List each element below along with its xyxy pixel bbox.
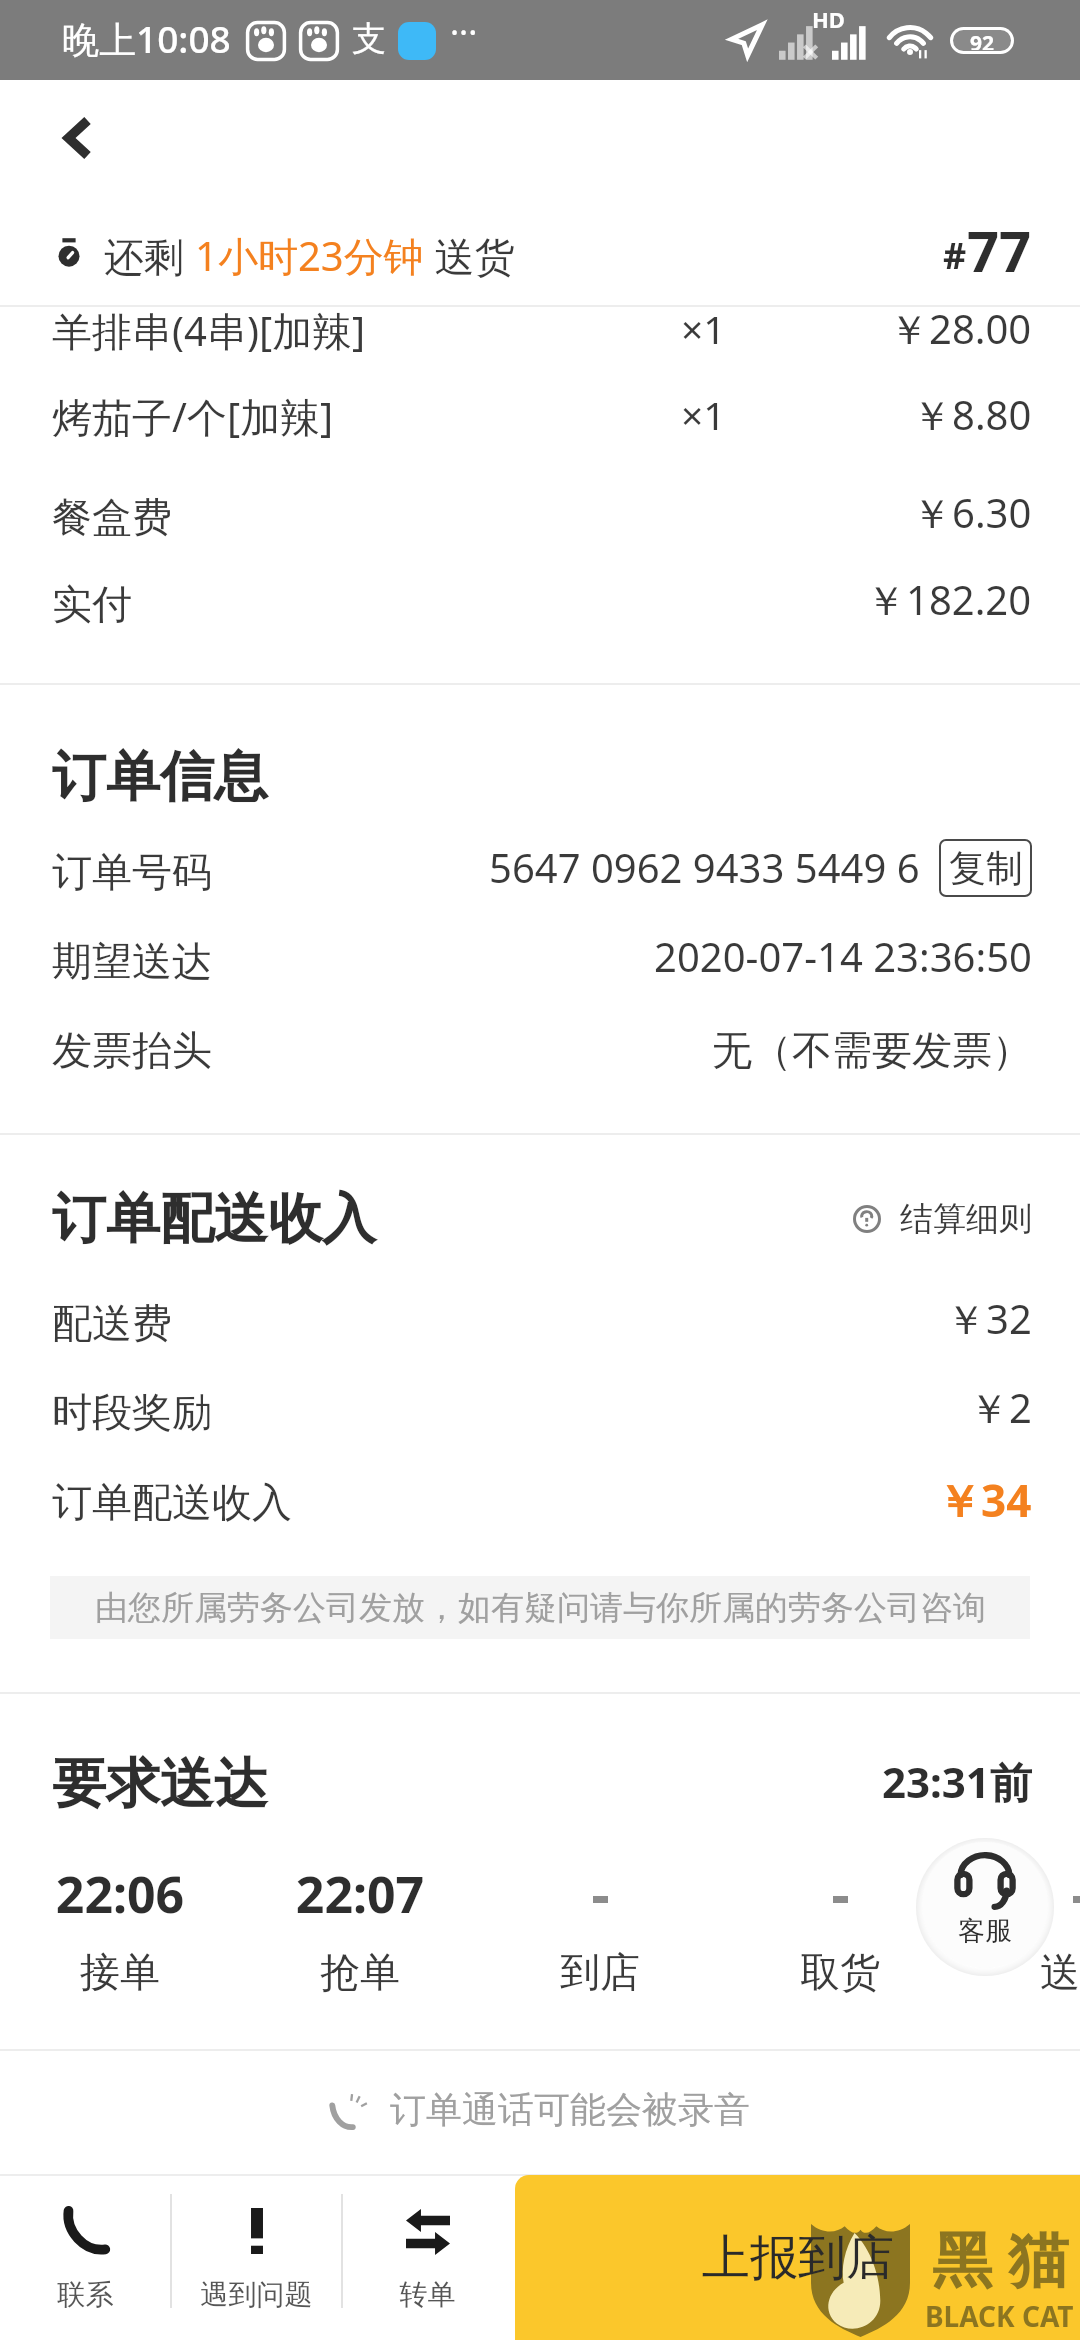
staticText: HD xyxy=(812,4,845,34)
staticText: ￥28.00 xyxy=(889,301,1032,356)
staticText: BLACK CAT xyxy=(925,2297,1074,2335)
staticText: ￥34 xyxy=(937,1470,1032,1530)
staticText: 1小时23分钟 xyxy=(195,228,424,283)
staticText: ×1 xyxy=(681,302,726,355)
staticText: 5647 0962 9433 5449 6 xyxy=(489,840,920,894)
staticText: 发票抬头 xyxy=(52,1025,212,1075)
button[interactable]: 上报到店 xyxy=(515,2175,1080,2340)
staticText: 要求送达 xyxy=(52,1750,268,1818)
staticText: 92 xyxy=(970,30,995,50)
staticText: 订单信息 xyxy=(52,743,268,811)
staticText: 联系 xyxy=(0,2277,171,2312)
staticText: 到店 xyxy=(480,1947,720,1997)
staticText: 结算细则 xyxy=(900,1198,1032,1240)
staticText: ￥6.30 xyxy=(912,485,1032,540)
staticText: 复制 xyxy=(949,845,1023,892)
staticText: 23:31前 xyxy=(882,1753,1032,1810)
staticText: 接单 xyxy=(0,1947,240,1997)
staticText: 配送费 xyxy=(52,1298,172,1348)
button[interactable]: 遇到问题 xyxy=(171,2176,342,2340)
staticText: 还剩 xyxy=(104,228,195,283)
staticText: # xyxy=(943,231,967,280)
staticText: 羊排串(4串)[加辣] xyxy=(52,303,366,358)
staticText: 由您所属劳务公司发放，如有疑问请与你所属的劳务公司咨询 xyxy=(95,1587,986,1629)
staticText: 订单配送收入 xyxy=(52,1185,376,1253)
staticText: 77 xyxy=(967,212,1032,288)
button[interactable]: Back xyxy=(38,98,118,178)
staticText: ￥8.80 xyxy=(912,387,1032,442)
staticText: ··· xyxy=(450,9,478,55)
staticText: 时段奖励 xyxy=(52,1387,212,1437)
staticText: 期望送达 xyxy=(52,936,212,986)
staticText: 烤茄子/个[加辣] xyxy=(52,389,334,444)
staticText: ￥182.20 xyxy=(866,572,1032,627)
staticText: 晚上10:08 xyxy=(62,13,231,64)
staticText: ×1 xyxy=(681,388,726,441)
staticText: 转单 xyxy=(342,2277,513,2312)
button[interactable]: 转单 xyxy=(342,2176,513,2340)
staticText: 订单号码 xyxy=(52,847,212,897)
staticText: 无（不需要发票） xyxy=(712,1025,1032,1075)
staticText: 送达 xyxy=(960,1947,1080,1997)
staticText: 2020-07-14 23:36:50 xyxy=(654,929,1032,983)
button[interactable]: 复制 xyxy=(939,839,1032,897)
staticText: 22:06 xyxy=(0,1860,240,1928)
button[interactable]: 联系 xyxy=(0,2176,171,2340)
staticText: 订单通话可能会被录音 xyxy=(390,2087,750,2132)
staticText: 22:07 xyxy=(240,1860,480,1928)
staticText: ￥32 xyxy=(946,1291,1032,1346)
button[interactable]: 客服 xyxy=(922,1842,1048,1968)
staticText: 餐盒费 xyxy=(52,492,172,542)
staticText: 取货 xyxy=(720,1947,960,1997)
staticText: 客服 xyxy=(922,1914,1048,1948)
staticText: 订单配送收入 xyxy=(52,1477,292,1527)
staticText: 支 xyxy=(352,17,386,60)
staticText: 抢单 xyxy=(240,1947,480,1997)
staticText: ￥2 xyxy=(969,1380,1032,1435)
staticText: 送货 xyxy=(424,228,515,283)
staticText: 遇到问题 xyxy=(171,2277,342,2312)
staticText: 实付 xyxy=(52,579,132,629)
staticText: 黑猫 xyxy=(924,2223,1076,2299)
staticText: 上报到店 xyxy=(702,2228,894,2288)
button[interactable]: 结算细则 xyxy=(853,1198,1032,1240)
